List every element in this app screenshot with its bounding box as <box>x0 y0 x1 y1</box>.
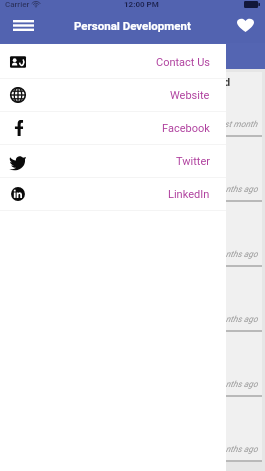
staticText: Website <box>170 89 210 102</box>
staticText: Carrier <box>5 0 30 9</box>
button[interactable]: The Habits of Highly Successful People <box>3 202 262 267</box>
button[interactable]: Contact Us <box>0 46 226 78</box>
button[interactable]: Twitter <box>0 145 226 177</box>
button[interactable]: Favorite <box>230 10 260 40</box>
staticText: 3 months ago <box>207 249 258 259</box>
staticText: last month <box>218 119 258 129</box>
staticText: Contact Us <box>156 56 210 69</box>
staticText: 5 months ago <box>207 379 258 389</box>
staticText: Personal Development <box>74 19 191 32</box>
button[interactable]: Focus Deeply And Win <box>3 397 262 462</box>
button[interactable]: The Complete Guide to Personal Growth an… <box>3 72 262 137</box>
staticText: LinkedIn <box>168 188 210 201</box>
button[interactable]: Website <box>0 79 226 111</box>
button[interactable]: Mindset Matters Every Day <box>3 332 262 397</box>
staticText: 12:00 PM <box>124 0 159 9</box>
staticText: The Complete Guide to Personal Growth an… <box>11 76 258 102</box>
button[interactable]: LinkedIn <box>0 178 226 210</box>
staticText: 4 months ago <box>207 314 258 324</box>
staticText: 6 months ago <box>207 444 258 454</box>
button[interactable]: Facebook <box>0 112 226 144</box>
staticText: 2 months ago <box>207 184 258 194</box>
button[interactable]: How to Become a Much Better Leader <box>3 137 262 202</box>
button[interactable]: Open navigation menu <box>6 10 41 40</box>
staticText: Facebook <box>162 122 210 135</box>
staticText: Twitter <box>176 155 210 168</box>
button[interactable]: Find Purpose in the Everyday of Life <box>3 267 262 332</box>
